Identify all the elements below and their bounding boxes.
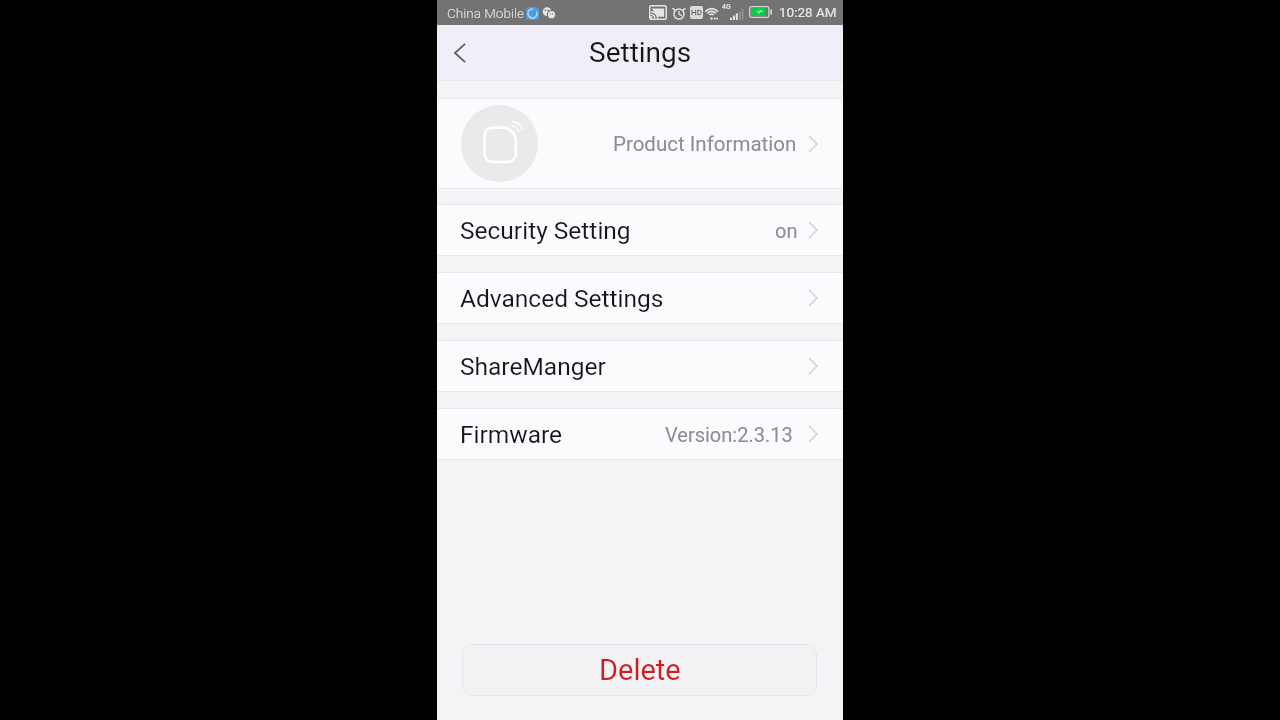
button[interactable]: Firmware [437, 409, 843, 459]
staticText: Product Information [613, 132, 797, 156]
staticText: Delete [599, 653, 681, 687]
staticText: on [775, 219, 798, 242]
staticText: China Mobile [447, 5, 524, 21]
button[interactable]: Back [437, 25, 483, 80]
staticText: Version:2.3.13 [665, 423, 793, 446]
staticText: 10:28 AM [779, 4, 837, 20]
staticText: Settings [589, 36, 692, 69]
button[interactable]: ShareManger [437, 341, 843, 391]
button[interactable]: Advanced Settings [437, 273, 843, 323]
button[interactable]: Security Setting [437, 205, 843, 255]
staticText: Advanced Settings [460, 284, 664, 313]
staticText: Security Setting [460, 216, 631, 245]
staticText: HD [691, 8, 702, 17]
staticText: ShareManger [460, 352, 606, 381]
button[interactable]: Product Information [437, 99, 843, 188]
button[interactable]: Delete [462, 644, 817, 696]
staticText: Firmware [460, 420, 563, 449]
staticText: 4G [722, 3, 731, 11]
